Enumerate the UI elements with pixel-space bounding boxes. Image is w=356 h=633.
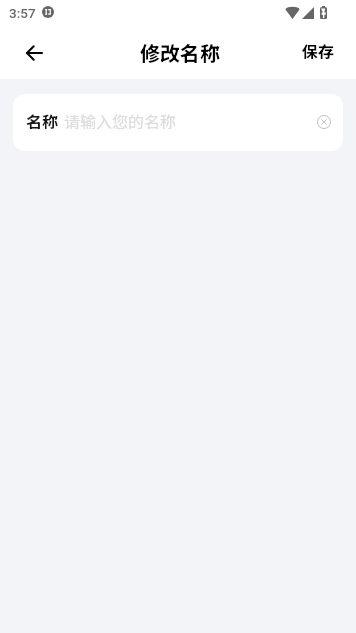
staticText: 请输入您的名称 bbox=[64, 109, 177, 132]
button[interactable]: 名称 bbox=[13, 94, 343, 151]
button[interactable]: Back bbox=[19, 38, 49, 68]
staticText: 修改名称 bbox=[140, 38, 220, 67]
staticText: 保存 bbox=[302, 39, 335, 62]
button[interactable]: 保存 bbox=[278, 31, 356, 74]
staticText: 名称 bbox=[26, 109, 59, 132]
staticText: 3:57 bbox=[9, 5, 36, 21]
button[interactable]: Clear text bbox=[308, 106, 340, 138]
